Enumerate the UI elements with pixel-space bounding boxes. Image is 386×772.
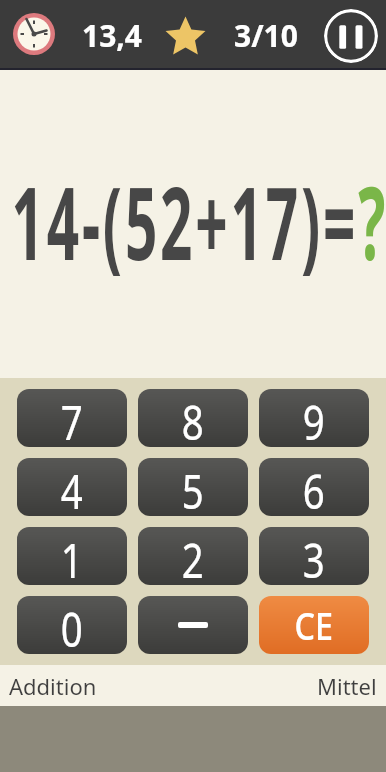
staticText: 14-(52+17)=? [11,153,386,289]
staticText: 3 [303,527,325,585]
staticText: CE [294,599,334,651]
staticText: 2 [182,527,204,585]
button[interactable]: 3 [259,527,369,585]
staticText: Mittel [317,671,377,701]
button[interactable]: 8 [138,389,248,447]
staticText: 6 [303,458,325,516]
staticText: 7 [61,389,83,447]
button[interactable]: 2 [138,527,248,585]
button[interactable]: 9 [259,389,369,447]
staticText: 0 [61,596,83,654]
button[interactable]: 0 [17,596,127,654]
staticText: 5 [182,458,204,516]
button[interactable]: 1 [17,527,127,585]
button[interactable]: 7 [17,389,127,447]
staticText: 4 [61,458,83,516]
button[interactable] [138,596,248,654]
button[interactable]: 4 [17,458,127,516]
button[interactable] [324,9,378,63]
staticText: 13,4 [82,15,143,56]
button[interactable]: 6 [259,458,369,516]
staticText: 9 [303,389,325,447]
staticText: Addition [9,671,97,701]
staticText: 3/10 [234,15,298,56]
button[interactable]: CE [259,596,369,654]
button[interactable]: 5 [138,458,248,516]
staticText: 8 [182,389,204,447]
staticText: 1 [61,527,83,585]
